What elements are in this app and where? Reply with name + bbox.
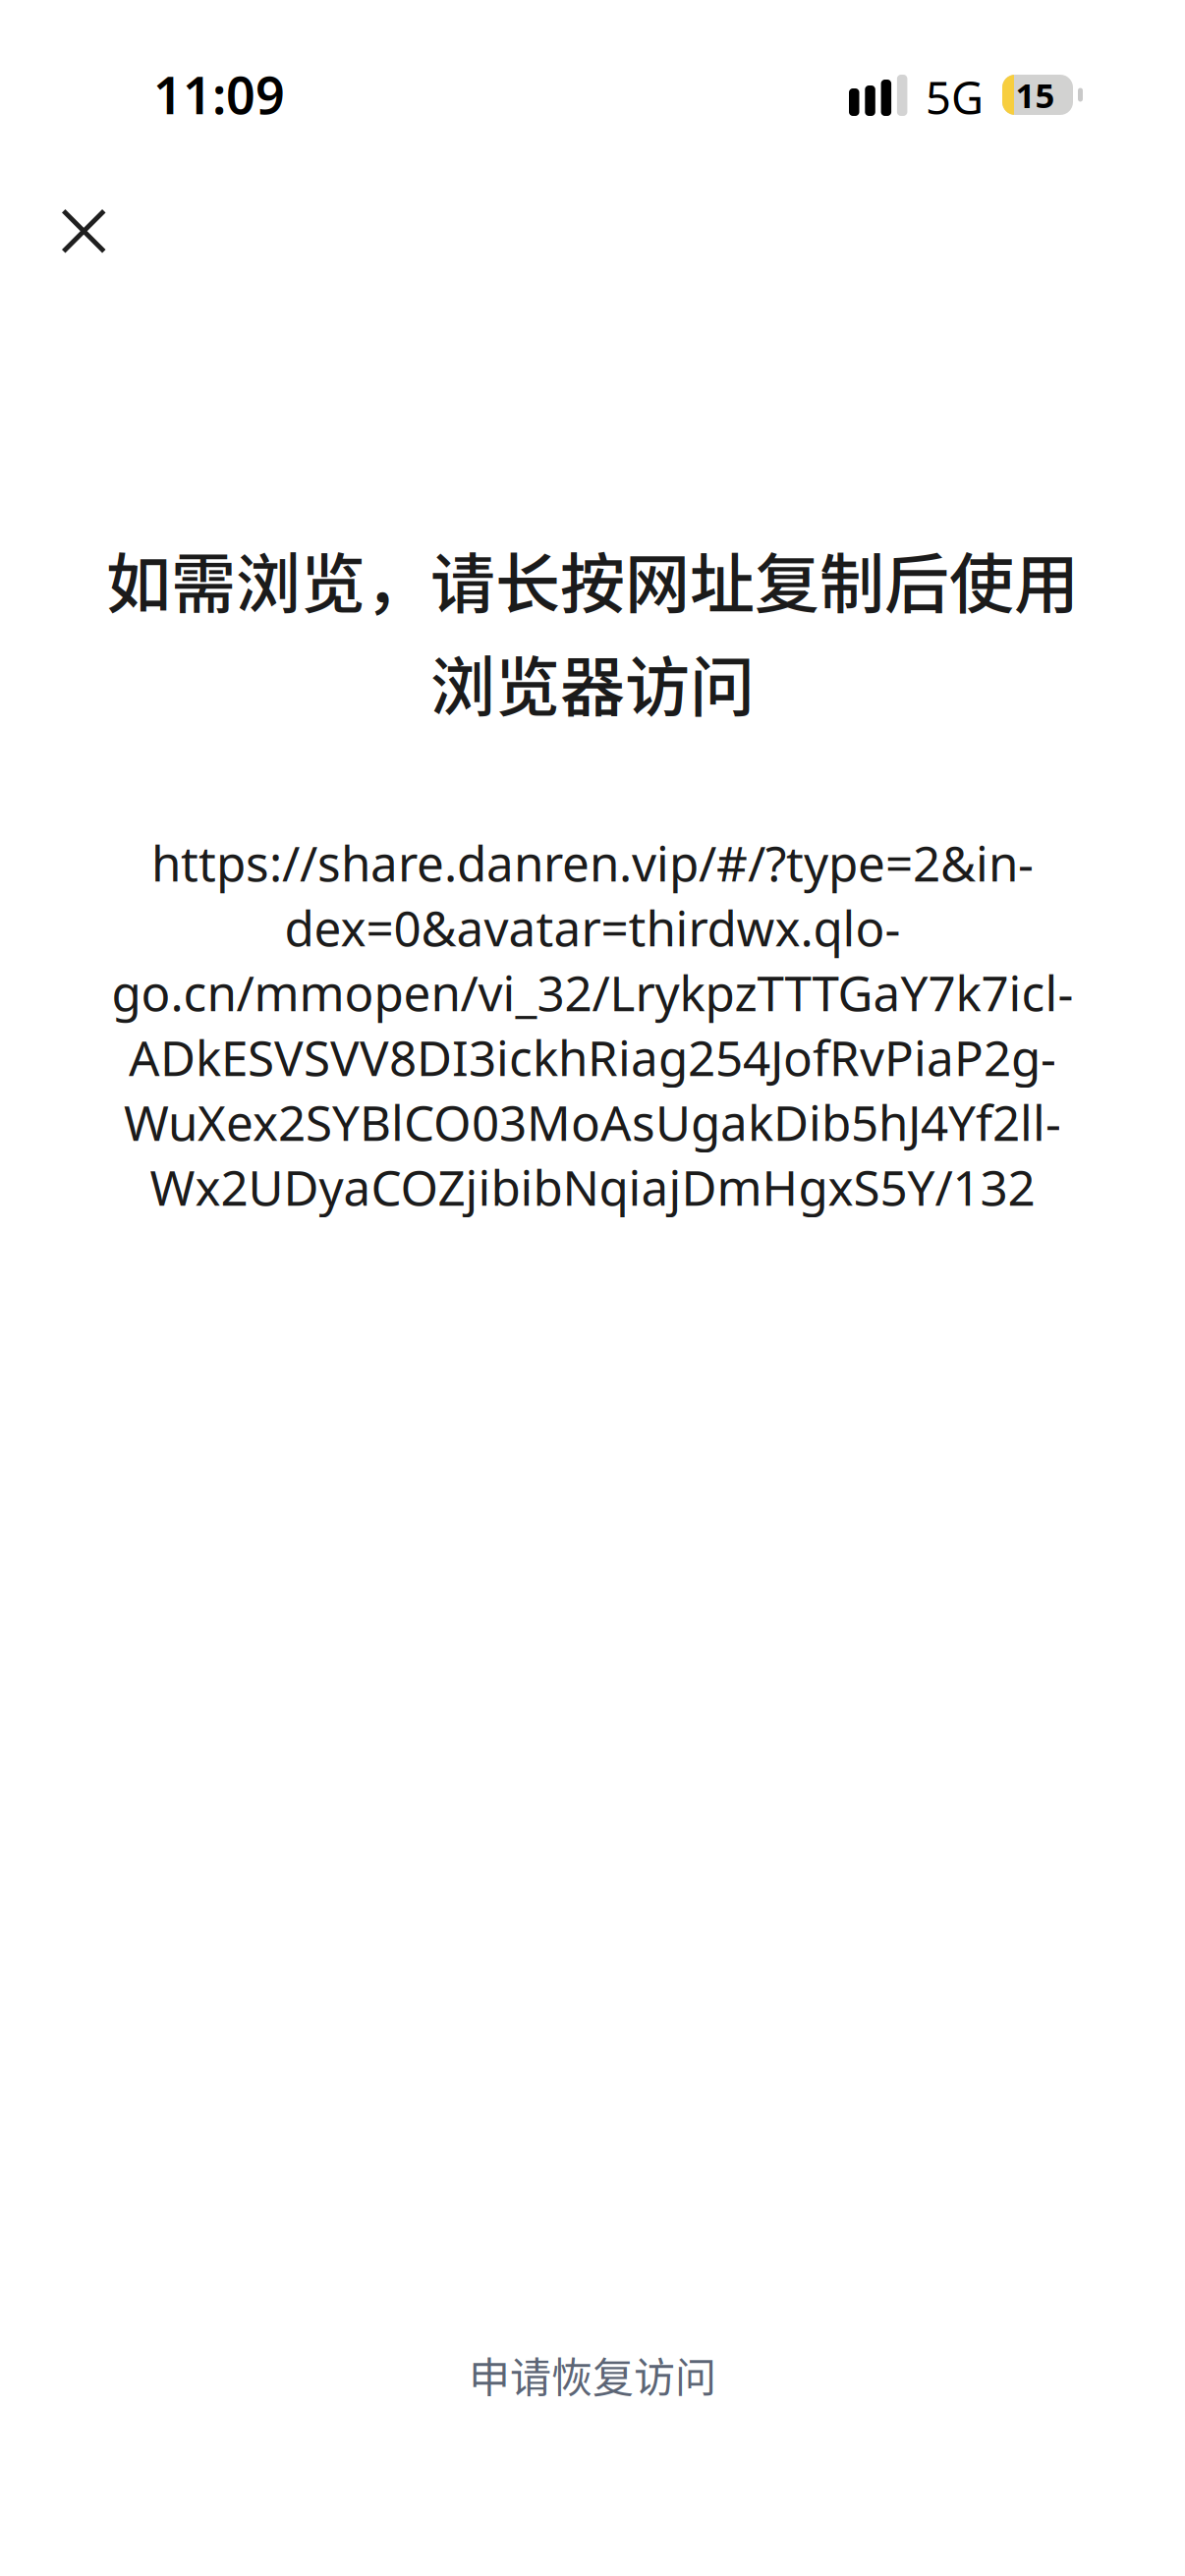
- staticText: go.cn/mmopen/vi_32/LrykpzTTTGaY7k7icl-: [112, 960, 1073, 1024]
- staticText: Wx2UDyaCOZjibibNqiajDmHgxS5Y/132: [150, 1155, 1035, 1219]
- staticText: 11:09: [153, 60, 285, 128]
- staticText: dex=0&avatar=thirdwx.qlo-: [284, 895, 901, 960]
- staticText: 如需浏览，请长按网址复制后使用: [106, 532, 1079, 626]
- button[interactable]: 申请恢复访问: [425, 2335, 760, 2414]
- staticText: 申请恢复访问: [469, 2345, 716, 2404]
- staticText: WuXex2SYBlCO03MoAsUgakDib5hJ4Yf2ll-: [124, 1090, 1061, 1154]
- staticText: 5G: [926, 68, 984, 127]
- staticText: 15: [1016, 72, 1055, 117]
- staticText: 浏览器访问: [430, 635, 755, 729]
- staticText: https://share.danren.vip/#/?type=2&in-: [151, 830, 1034, 895]
- button[interactable]: Close: [19, 167, 149, 296]
- staticText: ADkESVSVV8DI3ickhRiag254JofRvPiaP2g-: [129, 1025, 1056, 1089]
